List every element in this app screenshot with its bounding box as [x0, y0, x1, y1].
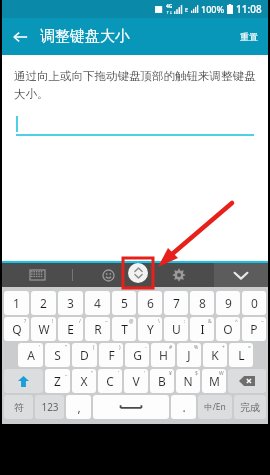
- button[interactable]: T: [112, 317, 136, 341]
- staticText: T: [121, 321, 128, 337]
- button[interactable]: R: [85, 317, 110, 341]
- staticText: ↑↓: [166, 10, 173, 15]
- button[interactable]: Back: [2, 19, 38, 55]
- button[interactable]: 完成: [234, 395, 266, 419]
- button[interactable]: Hide keyboard: [214, 263, 268, 287]
- staticText: M: [209, 373, 220, 389]
- staticText: 4G: [166, 3, 173, 10]
- staticText: (: [93, 344, 95, 351]
- button[interactable]: Settings: [144, 263, 214, 287]
- button[interactable]: 重置: [230, 23, 268, 50]
- staticText: 通过向上或向下拖动键盘顶部的触钮来调整键盘大小。: [14, 69, 256, 102]
- button[interactable]: M: [202, 369, 226, 393]
- staticText: ': [144, 370, 146, 377]
- staticText: Y: [147, 321, 154, 337]
- button[interactable]: L: [229, 343, 253, 367]
- button[interactable]: S: [45, 343, 70, 367]
- button[interactable]: B: [150, 369, 174, 393]
- button[interactable]: .: [171, 395, 196, 419]
- staticText: 0: [251, 295, 258, 311]
- staticText: L: [238, 347, 245, 363]
- button[interactable]: O: [216, 317, 240, 341]
- staticText: $: [195, 370, 198, 377]
- staticText: ): [119, 344, 121, 351]
- button[interactable]: G: [125, 343, 149, 367]
- staticText: G: [133, 347, 142, 363]
- button[interactable]: 9: [216, 291, 240, 315]
- staticText: &: [208, 318, 212, 325]
- button[interactable]: Q: [4, 317, 29, 341]
- staticText: E: [67, 321, 74, 337]
- staticText: R: [94, 321, 102, 337]
- staticText: V: [132, 373, 140, 389]
- button[interactable]: F: [99, 343, 123, 367]
- button[interactable]: Y: [138, 317, 162, 341]
- staticText: 中/En: [204, 401, 226, 413]
- button[interactable]: 5: [112, 291, 136, 315]
- button[interactable]: 0: [242, 291, 266, 315]
- button[interactable]: ,: [66, 395, 91, 419]
- staticText: D: [80, 347, 89, 363]
- button[interactable]: K: [203, 343, 227, 367]
- staticText: ~: [261, 318, 264, 325]
- staticText: `: [118, 370, 120, 377]
- staticText: 完成: [240, 401, 260, 414]
- button[interactable]: E: [58, 317, 83, 341]
- button[interactable]: 1: [4, 291, 29, 315]
- button[interactable]: X: [72, 369, 96, 393]
- staticText: A: [27, 347, 35, 363]
- button[interactable]: U: [164, 317, 188, 341]
- staticText: \: [158, 318, 160, 325]
- staticText: ^: [235, 318, 238, 325]
- button[interactable]: 3: [58, 291, 83, 315]
- staticText: ?: [24, 318, 27, 325]
- staticText: Z: [54, 373, 61, 389]
- staticText: 8: [199, 295, 206, 311]
- button[interactable]: 8: [190, 291, 214, 315]
- button[interactable]: 6: [138, 291, 162, 315]
- button[interactable]: V: [124, 369, 148, 393]
- staticText: 1: [13, 295, 20, 311]
- button[interactable]: Z: [45, 369, 70, 393]
- button[interactable]: P: [242, 317, 266, 341]
- staticText: N: [183, 373, 193, 389]
- button[interactable]: 2: [31, 291, 56, 315]
- staticText: :: [184, 318, 186, 325]
- staticText: =: [248, 344, 251, 351]
- staticText: C: [106, 373, 114, 389]
- staticText: _: [65, 370, 68, 377]
- staticText: 3: [67, 295, 74, 311]
- staticText: B: [158, 373, 166, 389]
- button[interactable]: D: [72, 343, 97, 367]
- button[interactable]: 中/En: [198, 395, 232, 419]
- button[interactable]: Keyboard layout: [2, 263, 72, 287]
- button[interactable]: Delete: [228, 369, 266, 393]
- button[interactable]: W: [31, 317, 56, 341]
- button[interactable]: J: [177, 343, 201, 367]
- button[interactable]: H: [151, 343, 175, 367]
- button[interactable]: I: [190, 317, 214, 341]
- button[interactable]: 4: [85, 291, 110, 315]
- staticText: %: [194, 344, 199, 351]
- button[interactable]: C: [98, 369, 122, 393]
- staticText: 调整键盘大小: [40, 27, 130, 46]
- staticText: ~: [105, 318, 108, 325]
- button[interactable]: Shift: [4, 369, 43, 393]
- button[interactable]: 7: [164, 291, 188, 315]
- button[interactable]: A: [18, 343, 43, 367]
- button[interactable]: Resize handle: [128, 263, 148, 283]
- button[interactable]: Emoji: [73, 263, 143, 287]
- staticText: ,: [77, 399, 81, 415]
- button[interactable]: 123: [35, 395, 64, 419]
- button[interactable]: N: [176, 369, 200, 393]
- staticText: /: [79, 318, 81, 325]
- staticText: E: [185, 6, 189, 13]
- staticText: 2: [40, 295, 47, 311]
- staticText: ': [39, 344, 41, 351]
- staticText: 7: [173, 295, 180, 311]
- button[interactable]: 符: [4, 395, 33, 419]
- staticText: #: [169, 344, 173, 351]
- staticText: J: [187, 347, 191, 363]
- button[interactable]: Space: [93, 395, 169, 419]
- staticText: X: [80, 373, 88, 389]
